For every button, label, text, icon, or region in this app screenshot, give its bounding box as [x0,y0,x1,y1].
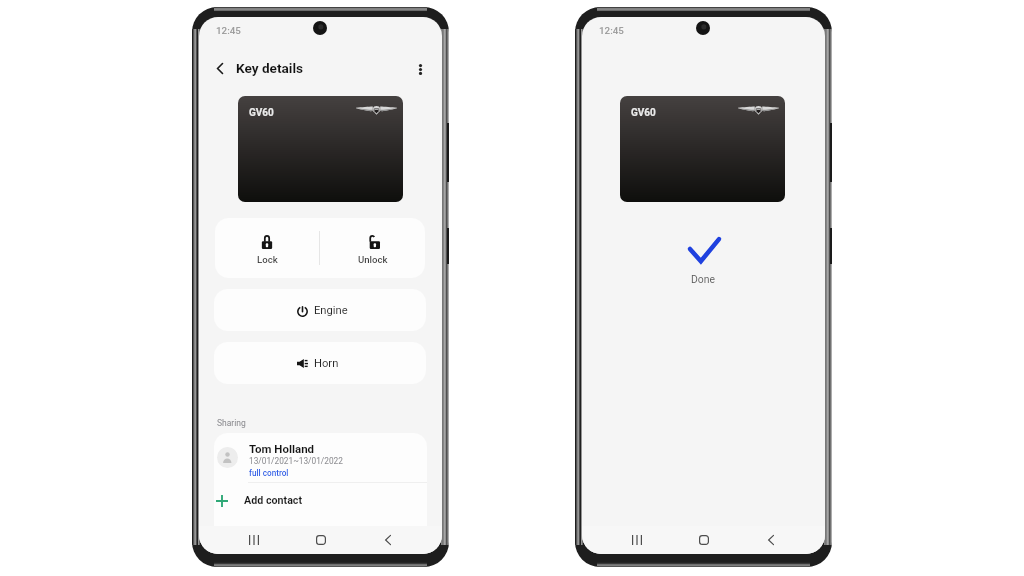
staticText: Tom Holland [249,442,315,455]
button[interactable]: Horn [214,342,426,384]
staticText: Engine [314,304,348,317]
button[interactable]: Recent apps [234,528,274,552]
button[interactable]: Home [300,528,342,552]
button[interactable]: Add contact [214,489,427,518]
staticText: Sharing [217,418,246,428]
button[interactable]: Engine [214,289,426,331]
staticText: Done [691,273,715,285]
button[interactable]: Lock [215,218,319,278]
button[interactable]: GV60 [238,96,403,202]
staticText: Unlock [358,254,388,265]
staticText: full control [249,468,289,478]
staticText: 12:45 [599,25,624,36]
staticText: Lock [257,254,278,265]
button[interactable]: Home [683,528,725,552]
staticText: Add contact [244,494,303,507]
staticText: Horn [314,357,339,370]
button[interactable]: Recent apps [617,528,657,552]
button[interactable]: GV60 [620,96,785,202]
button[interactable]: Back [205,53,235,83]
staticText: GV60 [249,107,274,119]
button[interactable]: Unlock [320,218,425,278]
staticText: GV60 [631,107,656,119]
staticText: 13/01/2021~13/01/2022 [249,456,343,466]
button[interactable]: More options [405,54,435,84]
staticText: Key details [236,60,304,76]
button[interactable]: Back [367,528,408,552]
staticText: 12:45 [216,25,241,36]
button[interactable]: Back [750,528,791,552]
